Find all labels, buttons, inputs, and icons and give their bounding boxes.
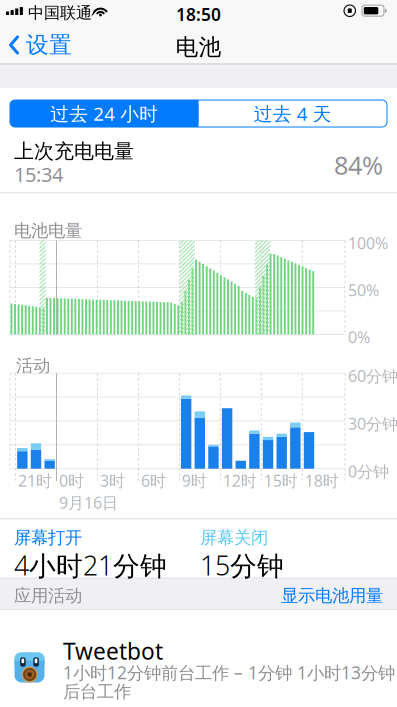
staticText: 显示电池用量 — [281, 585, 383, 606]
staticText: 3时 — [100, 470, 125, 491]
staticText: 9时 — [182, 470, 207, 491]
staticText: 15分钟 — [200, 547, 284, 583]
staticText: Tweetbot — [63, 636, 163, 666]
staticText: 30分钟 — [348, 413, 397, 434]
staticText: 后台工作 — [63, 681, 131, 702]
staticText: 50% — [348, 279, 379, 301]
button[interactable]: 过去 24 小时 — [10, 100, 198, 127]
staticText: 屏幕关闭 — [200, 527, 268, 548]
staticText: 21时 — [18, 470, 52, 491]
staticText: 60分钟 — [348, 365, 397, 386]
staticText: 活动 — [16, 355, 50, 376]
staticText: 过去 4 天 — [254, 101, 332, 126]
staticText: 0时 — [59, 470, 84, 491]
staticText: 设置 — [26, 31, 72, 59]
staticText: 应用活动 — [14, 585, 82, 606]
button[interactable]: 过去 4 天 — [198, 100, 387, 127]
staticText: 6时 — [141, 470, 166, 491]
staticText: 0分钟 — [348, 461, 389, 482]
staticText: 屏幕打开 — [14, 527, 82, 548]
staticText: 上次充电电量 — [14, 139, 134, 164]
staticText: 电池 — [175, 33, 221, 62]
staticText: 15:34 — [14, 161, 63, 188]
staticText: 15时 — [264, 470, 298, 491]
button[interactable]: Tweetbot — [0, 610, 397, 707]
staticText: 18:50 — [176, 2, 221, 26]
staticText: 4小时21分钟 — [14, 547, 167, 583]
staticText: 过去 24 小时 — [50, 101, 158, 126]
staticText: 84% — [334, 148, 383, 182]
staticText: 0% — [348, 326, 370, 348]
button[interactable]: 显示电池用量 — [233, 585, 383, 606]
staticText: 中国联通 — [28, 3, 92, 23]
button[interactable]: 设置 — [9, 30, 72, 60]
staticText: 18时 — [305, 470, 339, 491]
staticText: 12时 — [223, 470, 257, 491]
staticText: 9月16日 — [59, 492, 118, 513]
staticText: 1小时12分钟前台工作 – 1分钟 1小时13分钟 — [63, 661, 395, 684]
staticText: 100% — [348, 232, 388, 254]
staticText: 电池电量 — [14, 220, 82, 241]
